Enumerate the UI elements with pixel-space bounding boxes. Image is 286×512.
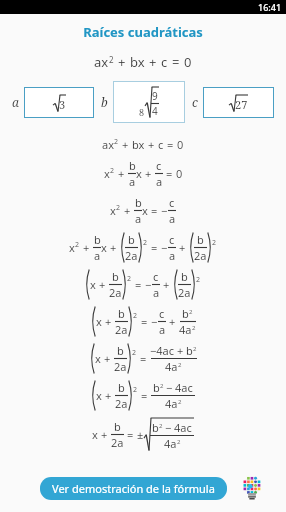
staticText: bx — [130, 53, 145, 71]
staticText: + — [169, 314, 176, 329]
staticText: + — [118, 166, 125, 181]
staticText: 2 — [133, 311, 138, 321]
staticText: = — [172, 53, 180, 71]
staticText: 27 — [235, 97, 248, 112]
staticText: + — [110, 240, 117, 255]
staticText: c — [169, 232, 175, 247]
staticText: 16:41 — [258, 1, 282, 13]
staticText: + — [83, 240, 90, 255]
staticText: = — [140, 351, 147, 366]
staticText: x — [92, 427, 98, 442]
staticText: bx — [132, 137, 145, 152]
staticText: 2 — [196, 275, 201, 285]
staticText: + — [105, 388, 112, 403]
staticText: x — [136, 166, 142, 181]
staticText: 2 — [133, 385, 138, 395]
staticText: b — [101, 94, 108, 110]
staticText: 2 — [177, 438, 181, 446]
staticText: 0 — [176, 166, 183, 181]
staticText: b — [135, 195, 142, 210]
staticText: + — [177, 343, 184, 358]
staticText: ± — [137, 427, 144, 442]
staticText: 2 — [193, 345, 197, 353]
staticText: − — [161, 240, 168, 255]
staticText: x — [95, 351, 101, 366]
staticText: 2 — [159, 422, 163, 430]
staticText: b — [128, 232, 135, 247]
staticText: a — [156, 174, 163, 189]
staticText: − — [165, 420, 172, 435]
button[interactable]: Ideas — [237, 473, 267, 503]
staticText: + — [104, 351, 111, 366]
staticText: 0 — [177, 137, 184, 152]
staticText: 4a — [179, 322, 192, 337]
button[interactable]: Campo c — [203, 87, 274, 118]
staticText: 3 — [59, 97, 66, 112]
staticText: −4ac — [150, 343, 175, 358]
staticText: x — [69, 240, 75, 255]
button[interactable]: Campo a — [24, 87, 94, 118]
staticText: x — [96, 314, 102, 329]
staticText: b — [153, 380, 160, 395]
staticText: 2 — [189, 308, 193, 316]
staticText: 2a — [114, 359, 127, 374]
staticText: c — [156, 158, 162, 173]
staticText: + — [149, 53, 157, 71]
staticText: c — [161, 53, 168, 71]
staticText: c — [192, 94, 198, 110]
staticText: b — [112, 269, 119, 284]
staticText: 2 — [160, 382, 164, 390]
staticText: 4 — [152, 104, 158, 118]
staticText: 2a — [194, 248, 207, 263]
staticText: Ver demostración de la fórmula — [52, 481, 215, 496]
staticText: x — [101, 240, 107, 255]
staticText: c — [169, 195, 175, 210]
staticText: 2 — [143, 238, 148, 248]
staticText: + — [163, 277, 170, 292]
staticText: 8 — [139, 106, 145, 118]
staticText: 2 — [178, 361, 182, 369]
staticText: c — [153, 269, 159, 284]
staticText: 2a — [178, 285, 191, 300]
staticText: + — [101, 427, 108, 442]
staticText: − — [145, 277, 152, 292]
staticText: + — [118, 53, 126, 71]
staticText: = — [151, 203, 158, 218]
button[interactable]: Ver demostración de la fórmula — [40, 477, 227, 500]
staticText: 2a — [109, 285, 122, 300]
staticText: c — [158, 137, 164, 152]
staticText: b — [118, 306, 125, 321]
staticText: = — [135, 277, 142, 292]
staticText: 4a — [165, 359, 178, 374]
staticText: 2a — [115, 396, 128, 411]
staticText: 2 — [178, 398, 182, 406]
staticText: x — [110, 203, 116, 218]
staticText: = — [166, 166, 173, 181]
staticText: + — [122, 137, 129, 152]
staticText: a — [169, 211, 176, 226]
staticText: a — [153, 285, 160, 300]
staticText: 2 — [116, 203, 121, 213]
staticText: b — [118, 380, 125, 395]
staticText: a — [12, 94, 19, 110]
button[interactable]: Campo b — [113, 81, 185, 123]
staticText: = — [151, 240, 158, 255]
staticText: a — [94, 248, 101, 263]
staticText: + — [145, 166, 152, 181]
staticText: 0 — [184, 53, 192, 71]
staticText: 4ac — [175, 380, 193, 395]
staticText: + — [179, 240, 186, 255]
staticText: + — [99, 277, 106, 292]
staticText: ax — [102, 137, 114, 152]
staticText: 4ac — [174, 420, 192, 435]
staticText: 2 — [110, 166, 115, 176]
staticText: b — [94, 232, 101, 247]
staticText: = — [127, 427, 134, 442]
staticText: ax — [94, 53, 109, 71]
staticText: + — [105, 314, 112, 329]
staticText: = — [141, 314, 148, 329]
staticText: a — [129, 174, 136, 189]
staticText: 4a — [165, 396, 178, 411]
staticText: 9 — [152, 89, 158, 103]
staticText: x — [96, 388, 102, 403]
